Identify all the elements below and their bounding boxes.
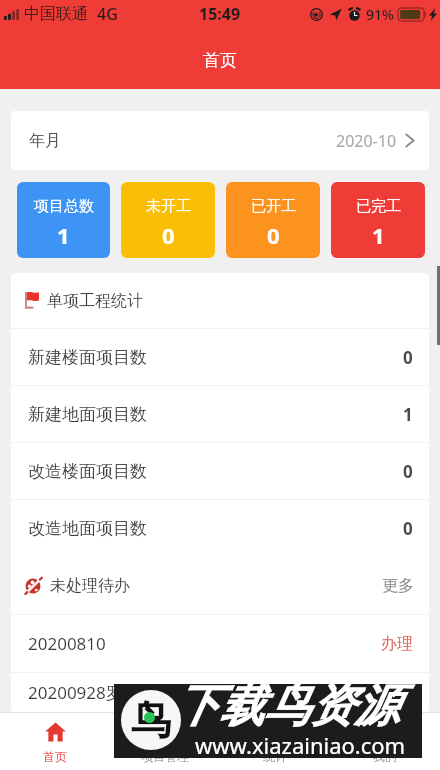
staticText: 已完工 <box>356 197 401 216</box>
staticText: 15:49 <box>199 3 241 25</box>
button[interactable]: 首页 <box>0 713 110 770</box>
staticText: 首页 <box>43 749 67 764</box>
staticText: 项目管理 <box>141 749 189 764</box>
staticText: 0 <box>403 460 413 483</box>
button[interactable]: 已开工 <box>226 182 320 258</box>
staticText: 91% <box>366 5 394 24</box>
button[interactable]: 统计 <box>220 713 330 770</box>
staticText: 未开工 <box>146 197 191 216</box>
staticText: 1 <box>57 220 70 250</box>
staticText: 1 <box>403 403 413 426</box>
staticText: 年月 <box>29 131 61 151</box>
staticText: 单项工程统计 <box>47 291 143 311</box>
staticText: 更多 <box>382 576 414 596</box>
staticText: 办理 <box>381 634 413 654</box>
button[interactable]: 单项工程统计 <box>25 273 414 328</box>
staticText: www.xiazainiao.com <box>195 730 406 760</box>
staticText: 统计 <box>263 749 287 764</box>
button[interactable]: 已完工 <box>331 182 425 258</box>
staticText: 20200810 <box>28 632 106 655</box>
staticText: 办理 <box>381 683 413 703</box>
button[interactable]: 未处理待办 <box>25 557 414 614</box>
staticText: 未处理待办 <box>50 576 130 596</box>
staticText: 0 <box>162 220 175 250</box>
staticText: 我的 <box>373 749 397 764</box>
staticText: 改造楼面项目数 <box>28 461 147 482</box>
staticText: 1 <box>372 220 385 250</box>
staticText: 4G <box>97 3 118 25</box>
button[interactable]: 新建地面项目数 <box>28 386 413 442</box>
button[interactable]: 改造楼面项目数 <box>28 443 413 499</box>
button[interactable]: 改造地面项目数 <box>28 500 413 557</box>
staticText: 鸟 <box>131 695 171 745</box>
staticText: 新建地面项目数 <box>28 404 147 425</box>
button[interactable]: 我的 <box>330 713 440 770</box>
staticText: 已开工 <box>251 197 296 216</box>
button[interactable]: 年月 <box>11 111 429 170</box>
staticText: 项目总数 <box>34 197 94 216</box>
staticText: 2020-10 <box>336 130 397 152</box>
staticText: 下载鸟资源 <box>174 678 399 735</box>
button[interactable]: 20200810 <box>28 615 413 672</box>
staticText: 0 <box>403 346 413 369</box>
button[interactable]: 新建楼面项目数 <box>28 329 413 385</box>
button[interactable]: 20200928罗湖区某某工程 <box>28 673 413 712</box>
staticText: 0 <box>267 220 280 250</box>
staticText: 中国联通 <box>24 4 88 24</box>
button[interactable]: 项目总数 <box>17 182 110 258</box>
staticText: 改造地面项目数 <box>28 518 147 539</box>
staticText: 20200928罗湖区某某工程 <box>28 681 225 704</box>
button[interactable]: 项目管理 <box>110 713 220 770</box>
button[interactable]: 未开工 <box>121 182 215 258</box>
staticText: 新建楼面项目数 <box>28 347 147 368</box>
staticText: 0 <box>403 517 413 540</box>
staticText: 首页 <box>203 50 237 71</box>
